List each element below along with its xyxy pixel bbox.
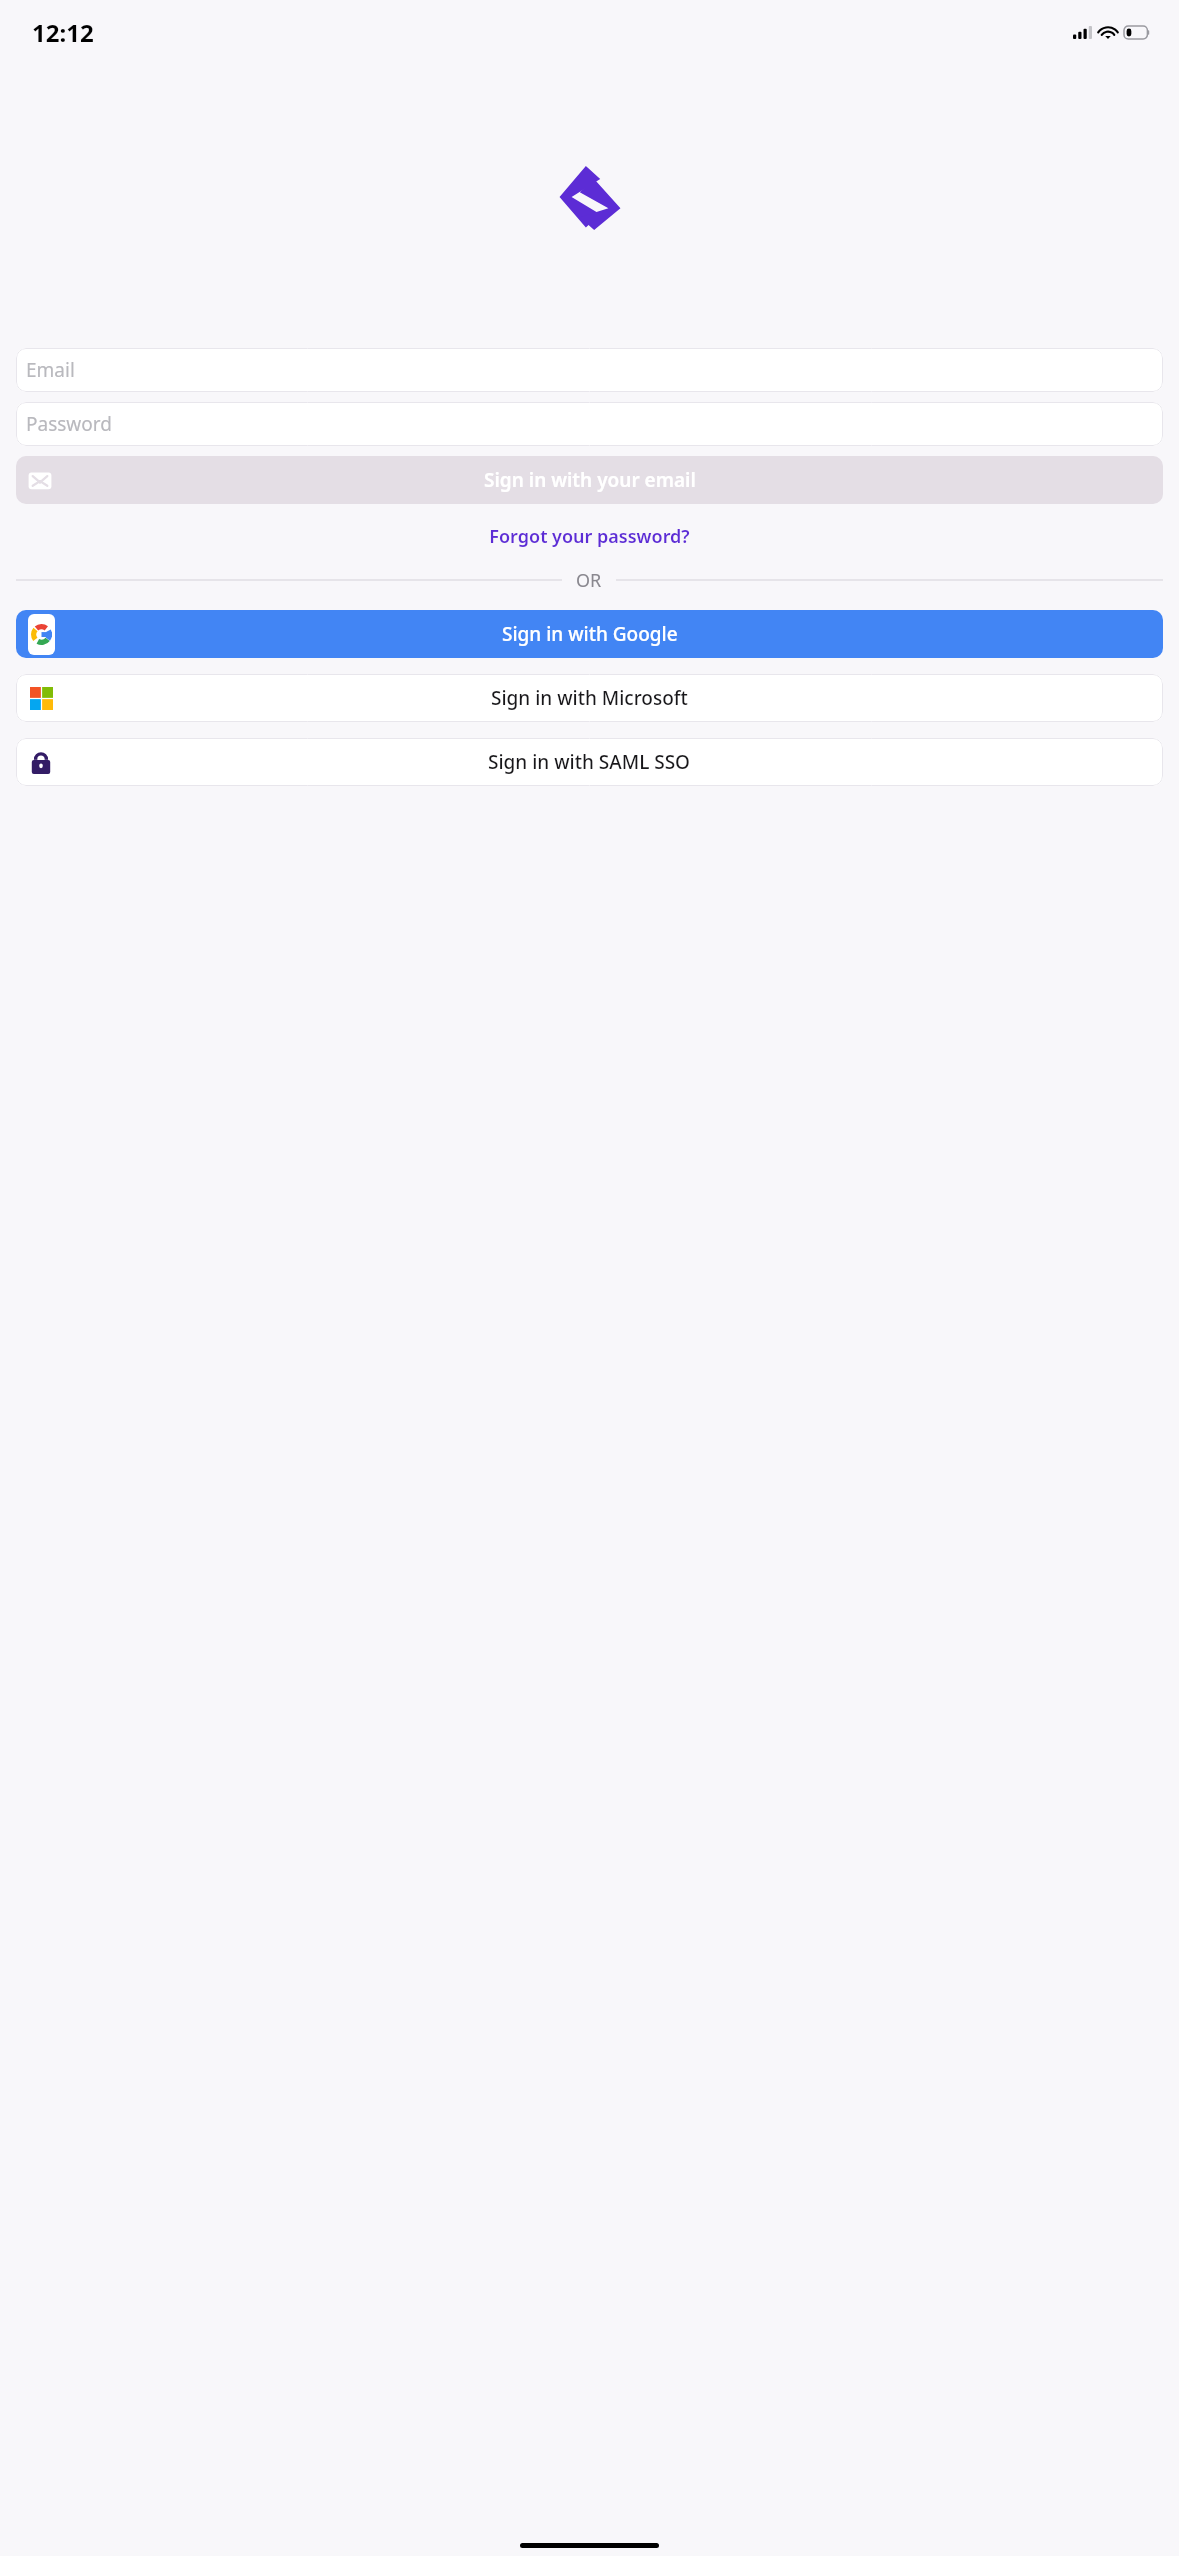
button[interactable]: Sign in with your email — [16, 456, 1163, 504]
staticText: Sign in with SAML SSO — [488, 749, 691, 775]
button[interactable]: Forgot your password? — [16, 524, 1163, 549]
button[interactable]: Password — [16, 402, 1163, 446]
staticText: Email — [26, 357, 75, 383]
staticText: Sign in with Google — [502, 621, 678, 647]
button[interactable]: Sign in with Google — [16, 610, 1163, 658]
staticText: OR — [576, 568, 602, 592]
button[interactable]: Sign in with SAML SSO — [16, 738, 1163, 786]
staticText: Password — [26, 411, 112, 437]
staticText: Forgot your password? — [489, 524, 690, 549]
button[interactable]: Email — [16, 348, 1163, 392]
staticText: Sign in with your email — [484, 467, 696, 493]
button[interactable]: Sign in with Microsoft — [16, 674, 1163, 722]
staticText: Sign in with Microsoft — [491, 685, 688, 711]
staticText: 12:12 — [32, 16, 94, 49]
